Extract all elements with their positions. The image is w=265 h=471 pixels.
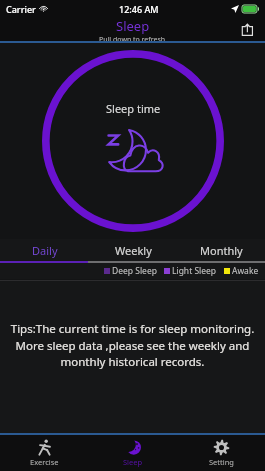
button[interactable]: Monthly: [177, 239, 265, 261]
staticText: Sleep time: [106, 101, 161, 116]
staticText: Setting: [209, 457, 234, 467]
staticText: Awake: [232, 265, 259, 277]
staticText: Sleep: [123, 457, 143, 467]
staticText: Daily: [32, 243, 58, 258]
button[interactable]: Sleep: [89, 435, 177, 471]
button[interactable]: Weekly: [89, 239, 177, 261]
staticText: Deep Sleep: [112, 265, 157, 277]
staticText: Pull down to refresh: [99, 35, 166, 41]
staticText: Weekly: [115, 243, 152, 258]
staticText: 12:46 AM: [119, 3, 159, 15]
staticText: Exercise: [30, 457, 59, 467]
button[interactable]: Setting: [177, 435, 265, 471]
staticText: Light Sleep: [172, 265, 217, 277]
button[interactable]: Exercise: [0, 435, 89, 471]
staticText: Monthly: [200, 243, 243, 258]
button[interactable]: Daily: [0, 239, 89, 261]
staticText: Sleep: [116, 17, 150, 35]
staticText: Tips:The current time is for sleep monit…: [10, 321, 255, 369]
button[interactable]: Share: [237, 19, 257, 39]
staticText: Carrier: [6, 3, 36, 15]
